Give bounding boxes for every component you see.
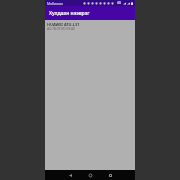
button[interactable]: Back bbox=[65, 170, 75, 180]
staticText: HUAWEI ATU-L31 bbox=[47, 22, 80, 27]
staticText: Хулдаан нээврэг bbox=[49, 10, 90, 17]
button[interactable]: Recents bbox=[105, 170, 115, 180]
staticText: A0:7B:0F:9D:69:AE bbox=[47, 26, 76, 30]
staticText: Мобиком bbox=[47, 1, 63, 6]
staticText: 4G bbox=[117, 1, 122, 5]
button[interactable]: Home bbox=[85, 170, 95, 180]
button[interactable]: HUAWEI ATU-L31 bbox=[45, 20, 135, 34]
